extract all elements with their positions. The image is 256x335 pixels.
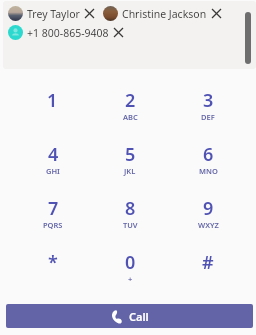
button[interactable]: 7 (14, 185, 91, 239)
staticText: 5 (125, 142, 136, 167)
button[interactable]: 3 (169, 77, 247, 131)
staticText: 6 (203, 142, 214, 167)
button[interactable]: +1 800-865-9408 (8, 25, 124, 40)
button[interactable]: 4 (14, 131, 91, 185)
staticText: 1 (47, 88, 58, 113)
other: Remove (84, 8, 95, 19)
button[interactable]: 6 (169, 131, 247, 185)
staticText: PQRS (43, 220, 63, 230)
button[interactable]: 9 (169, 185, 247, 239)
staticText: # (202, 250, 214, 275)
staticText: 8 (125, 196, 136, 221)
other: Remove (211, 8, 222, 19)
staticText: Call (129, 309, 149, 324)
staticText: DEF (201, 112, 215, 122)
button[interactable]: * (14, 239, 91, 293)
staticText: TUV (123, 220, 138, 230)
button[interactable]: 2 (91, 77, 169, 131)
staticText: ABC (123, 112, 138, 122)
staticText: +1 800-865-9408 (27, 26, 109, 40)
button[interactable]: 0 (91, 239, 169, 293)
staticText: Trey Taylor (27, 7, 80, 21)
staticText: GHI (46, 166, 60, 176)
button[interactable]: Call (6, 304, 253, 328)
staticText: 2 (125, 88, 136, 113)
staticText: 3 (203, 88, 214, 113)
button[interactable]: 8 (91, 185, 169, 239)
other: Call (111, 310, 122, 324)
staticText: 9 (203, 196, 214, 221)
staticText: 0 (125, 250, 136, 275)
staticText: JKL (124, 166, 136, 176)
other: Remove (113, 27, 124, 38)
staticText: WXYZ (198, 220, 219, 230)
staticText: + (128, 274, 133, 284)
staticText: * (48, 250, 58, 275)
button[interactable]: # (169, 239, 247, 293)
staticText: Christine Jackson (122, 7, 207, 21)
staticText: MNO (199, 166, 218, 176)
staticText: 7 (48, 196, 59, 221)
staticText: 4 (48, 142, 59, 167)
button[interactable]: Trey Taylor (8, 6, 95, 21)
button[interactable]: 5 (91, 131, 169, 185)
button[interactable]: 1 (14, 77, 91, 131)
button[interactable]: Christine Jackson (103, 6, 222, 21)
